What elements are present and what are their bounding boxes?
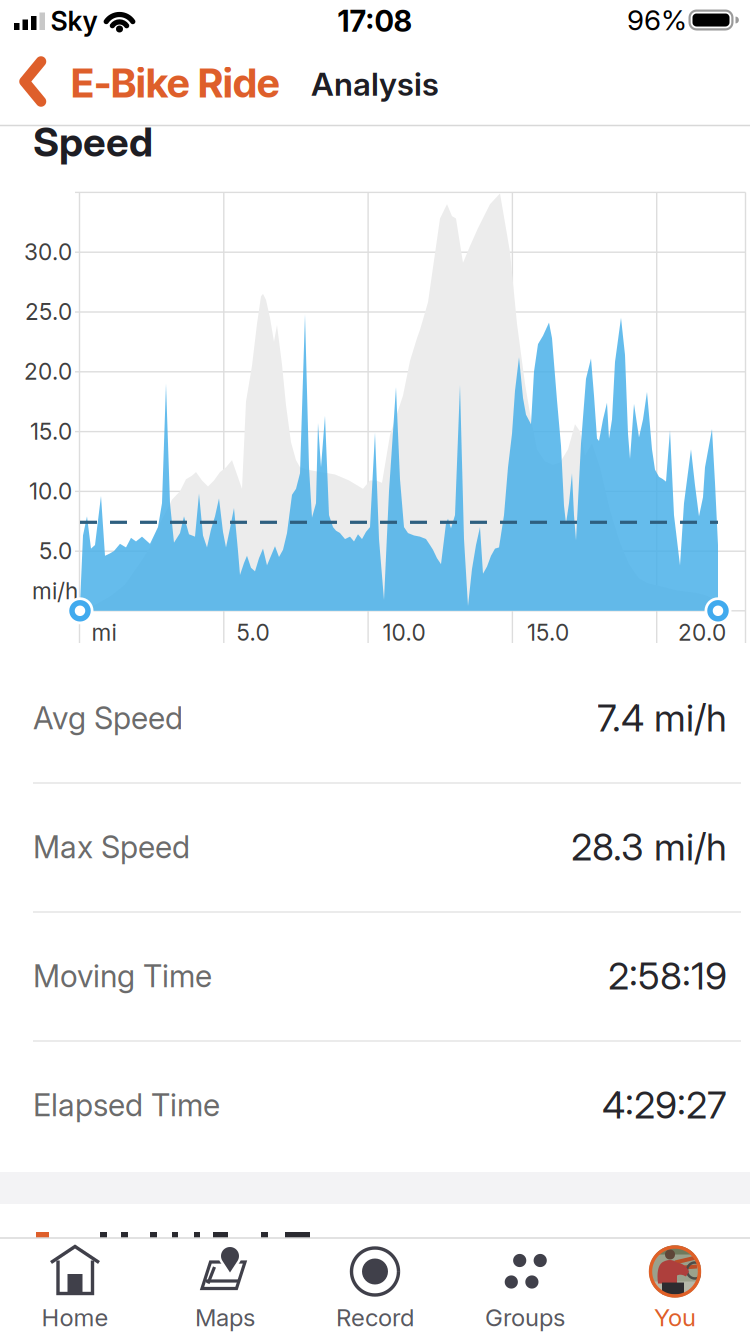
staticText: Speed: [33, 118, 153, 166]
staticText: 30.0: [24, 239, 72, 265]
button[interactable]: Maps: [150, 1239, 300, 1334]
staticText: 10.0: [29, 478, 72, 504]
staticText: mi/h: [32, 578, 78, 604]
staticText: 15.0: [527, 619, 569, 646]
staticText: 5.0: [236, 619, 269, 646]
staticText: Moving Time: [33, 958, 212, 994]
staticText: Avg Speed: [33, 700, 183, 736]
button[interactable]: Record: [300, 1239, 450, 1334]
staticText: 20.0: [24, 358, 72, 385]
staticText: Max Speed: [33, 829, 190, 865]
staticText: 17:08: [337, 4, 412, 38]
staticText: E-Bike Ride: [71, 59, 280, 107]
button[interactable]: Back: [0, 44, 400, 126]
staticText: 15.0: [30, 418, 72, 445]
button[interactable]: You: [600, 1239, 750, 1334]
staticText: You: [654, 1303, 696, 1332]
staticText: 25.0: [25, 298, 72, 325]
staticText: 4:29:27: [602, 1083, 727, 1127]
staticText: Home: [41, 1303, 108, 1332]
staticText: Maps: [195, 1303, 255, 1332]
staticText: 2:58:19: [608, 954, 727, 998]
staticText: Groups: [485, 1303, 565, 1332]
staticText: Elapsed Time: [33, 1087, 220, 1123]
button[interactable]: Groups: [450, 1239, 600, 1334]
staticText: 96%: [627, 3, 687, 36]
staticText: Sky: [50, 5, 97, 37]
staticText: 28.3 mi/h: [571, 825, 727, 869]
staticText: 20.0: [678, 619, 726, 646]
staticText: Record: [336, 1303, 414, 1332]
staticText: 7.4 mi/h: [597, 696, 727, 740]
staticText: 5.0: [39, 538, 72, 564]
button[interactable]: Home: [0, 1239, 150, 1334]
staticText: Analysis: [311, 65, 439, 103]
staticText: mi: [91, 619, 116, 646]
staticText: 10.0: [382, 619, 425, 646]
